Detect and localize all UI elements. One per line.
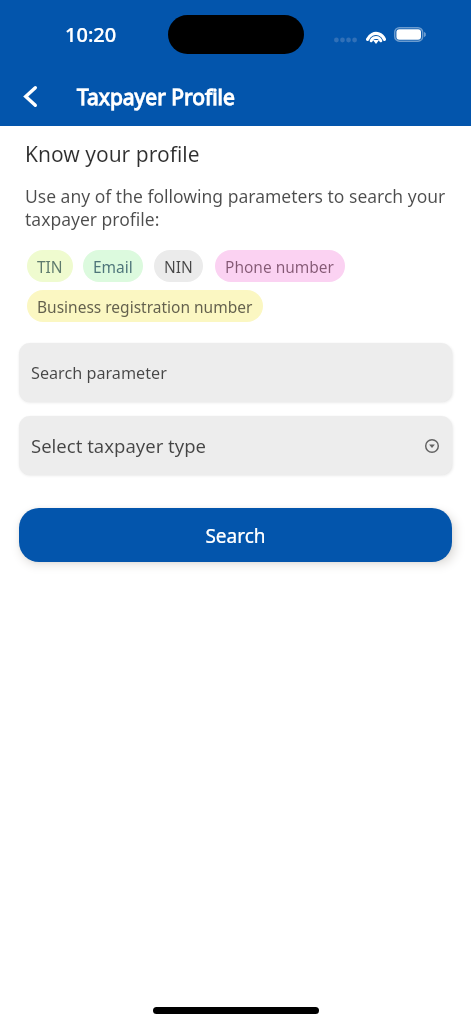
staticText: Phone number <box>225 256 335 277</box>
button[interactable]: Search <box>19 508 452 562</box>
button[interactable]: Select taxpayer type <box>19 416 452 475</box>
staticText: TIN <box>37 256 63 277</box>
button[interactable]: Search parameter <box>19 343 452 402</box>
button[interactable]: Business registration number <box>27 290 263 322</box>
staticText: NIN <box>164 256 193 277</box>
staticText: Search <box>205 523 266 549</box>
button[interactable]: Back <box>8 72 52 116</box>
staticText: Business registration number <box>37 296 253 317</box>
button[interactable]: NIN <box>154 250 203 282</box>
staticText: Select taxpayer type <box>31 433 207 458</box>
staticText: Search parameter <box>31 362 167 384</box>
button[interactable]: Phone number <box>215 250 345 282</box>
button[interactable]: Email <box>83 250 143 282</box>
button[interactable]: TIN <box>27 250 73 282</box>
staticText: 10:20 <box>65 21 117 48</box>
staticText: Email <box>93 256 133 277</box>
staticText: Know your profile <box>25 140 200 169</box>
staticText: Use any of the following parameters to s… <box>25 184 459 232</box>
staticText: Taxpayer Profile <box>77 83 235 112</box>
